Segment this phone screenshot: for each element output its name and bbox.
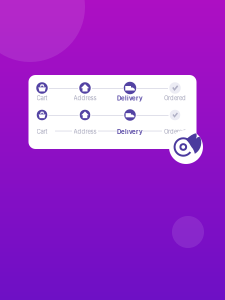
button[interactable]: Delivery — [124, 82, 136, 94]
button[interactable]: Ordered — [170, 110, 180, 120]
button[interactable]: Address — [79, 82, 91, 94]
button[interactable]: Cart — [36, 82, 48, 94]
staticText: Cart — [36, 94, 47, 102]
staticText: Delivery — [117, 94, 143, 102]
staticText: Address — [73, 128, 96, 135]
button[interactable]: Cart — [37, 110, 47, 120]
staticText: Delivery — [117, 128, 143, 135]
staticText: Ordered — [164, 128, 186, 135]
staticText: Ordered — [164, 94, 186, 102]
staticText: Cart — [36, 128, 47, 135]
button[interactable]: Delivery — [124, 109, 136, 121]
button[interactable]: Address — [80, 110, 90, 120]
button[interactable]: Brand logo — [169, 130, 203, 164]
staticText: Address — [73, 94, 96, 102]
button[interactable]: Ordered — [169, 82, 181, 94]
